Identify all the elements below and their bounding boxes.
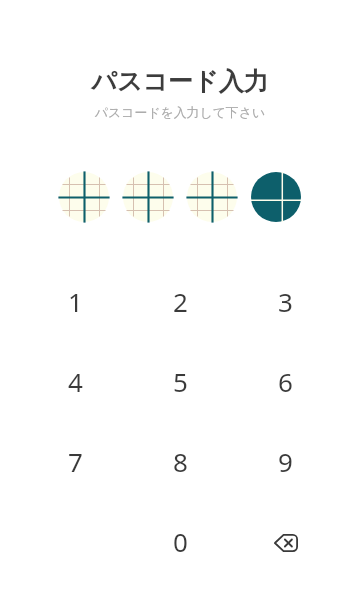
other: Backspace: [274, 534, 298, 552]
staticText: 8: [173, 444, 188, 479]
button[interactable]: 9: [233, 421, 338, 501]
button[interactable]: 5: [128, 341, 233, 421]
staticText: 5: [173, 364, 188, 399]
button[interactable]: 6: [233, 341, 338, 421]
button[interactable]: 1: [22, 261, 128, 341]
button[interactable]: 2: [128, 261, 233, 341]
button[interactable]: 7: [22, 421, 128, 501]
staticText: 0: [173, 524, 188, 559]
button[interactable]: 0: [128, 501, 233, 581]
button[interactable]: 4: [22, 341, 128, 421]
staticText: 2: [173, 284, 188, 319]
button[interactable]: Backspace: [233, 501, 338, 581]
staticText: 9: [278, 444, 293, 479]
staticText: パスコードを入力して下さい: [0, 105, 360, 121]
button[interactable]: 8: [128, 421, 233, 501]
staticText: 3: [278, 284, 293, 319]
staticText: 1: [68, 284, 83, 319]
staticText: パスコード入力: [0, 66, 360, 97]
button[interactable]: 3: [233, 261, 338, 341]
staticText: 4: [68, 364, 83, 399]
staticText: 7: [68, 444, 83, 479]
staticText: 6: [278, 364, 293, 399]
